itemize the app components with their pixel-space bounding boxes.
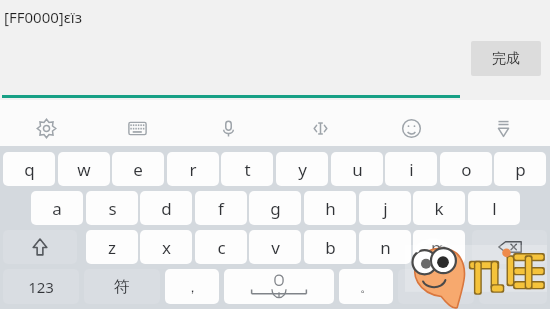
staticText: x <box>162 236 171 259</box>
button[interactable]: i <box>385 152 437 186</box>
button[interactable]: 。 <box>339 269 393 304</box>
staticText: n <box>380 236 391 259</box>
staticText: f <box>218 197 224 220</box>
staticText: s <box>108 197 117 220</box>
button[interactable]: w <box>58 152 110 186</box>
button[interactable]: z <box>86 230 138 264</box>
button[interactable]: b <box>304 230 356 264</box>
button[interactable]: j <box>359 191 411 225</box>
staticText: 符 <box>114 277 130 297</box>
staticText: m <box>431 236 447 259</box>
staticText: k <box>434 197 444 220</box>
staticText: h <box>325 197 336 220</box>
button[interactable]: Switch keyboard <box>115 106 159 150</box>
staticText: c <box>217 236 226 259</box>
staticText: r <box>189 158 197 181</box>
button[interactable]: Emoji <box>389 106 433 150</box>
button[interactable]: ， <box>165 269 219 304</box>
staticText: v <box>271 236 280 259</box>
staticText: o <box>461 158 472 181</box>
button[interactable]: c <box>195 230 247 264</box>
button[interactable]: f <box>195 191 247 225</box>
button[interactable]: l <box>468 191 520 225</box>
button[interactable]: 符 <box>84 269 160 304</box>
staticText: 123 <box>28 277 54 297</box>
button[interactable]: y <box>276 152 328 186</box>
button[interactable]: Voice input <box>206 106 250 150</box>
button[interactable]: Hide keyboard <box>481 106 525 150</box>
button[interactable]: 123 <box>3 269 79 304</box>
staticText: i <box>409 158 414 181</box>
button[interactable]: v <box>249 230 301 264</box>
button[interactable]: n <box>359 230 411 264</box>
button[interactable]: m <box>413 230 465 264</box>
button[interactable]: p <box>494 152 546 186</box>
button[interactable]: r <box>167 152 219 186</box>
staticText: u <box>352 158 363 181</box>
staticText: w <box>77 158 91 181</box>
button[interactable]: s <box>86 191 138 225</box>
button[interactable]: 完成 <box>471 41 541 76</box>
button[interactable]: q <box>3 152 55 186</box>
button[interactable]: x <box>140 230 192 264</box>
button[interactable]: Shift <box>3 230 77 264</box>
staticText: p <box>515 158 526 181</box>
button[interactable]: k <box>413 191 465 225</box>
staticText: g <box>270 197 281 220</box>
button[interactable]: Space <box>224 269 334 304</box>
button[interactable]: e <box>112 152 164 186</box>
button[interactable]: Backspace <box>472 230 547 264</box>
button[interactable]: Settings <box>24 106 68 150</box>
staticText: d <box>161 197 172 220</box>
staticText: t <box>244 158 251 181</box>
button[interactable]: Emoji <box>398 269 474 304</box>
staticText: 。 <box>360 279 373 295</box>
button[interactable]: a <box>31 191 83 225</box>
staticText: [FF0000]εïз <box>4 7 83 27</box>
staticText: e <box>133 158 143 181</box>
staticText: a <box>52 197 62 220</box>
button[interactable]: Move cursor <box>298 106 342 150</box>
staticText: q <box>24 158 35 181</box>
staticText: l <box>492 197 497 220</box>
button[interactable]: o <box>440 152 492 186</box>
staticText: z <box>108 236 116 259</box>
button[interactable]: h <box>304 191 356 225</box>
staticText: y <box>298 158 307 181</box>
button[interactable]: Enter <box>479 269 547 304</box>
button[interactable]: d <box>140 191 192 225</box>
button[interactable]: g <box>249 191 301 225</box>
button[interactable]: t <box>221 152 273 186</box>
staticText: j <box>383 197 388 220</box>
button[interactable]: u <box>331 152 383 186</box>
staticText: ， <box>186 279 199 295</box>
staticText: b <box>325 236 336 259</box>
staticText: 完成 <box>492 50 520 68</box>
